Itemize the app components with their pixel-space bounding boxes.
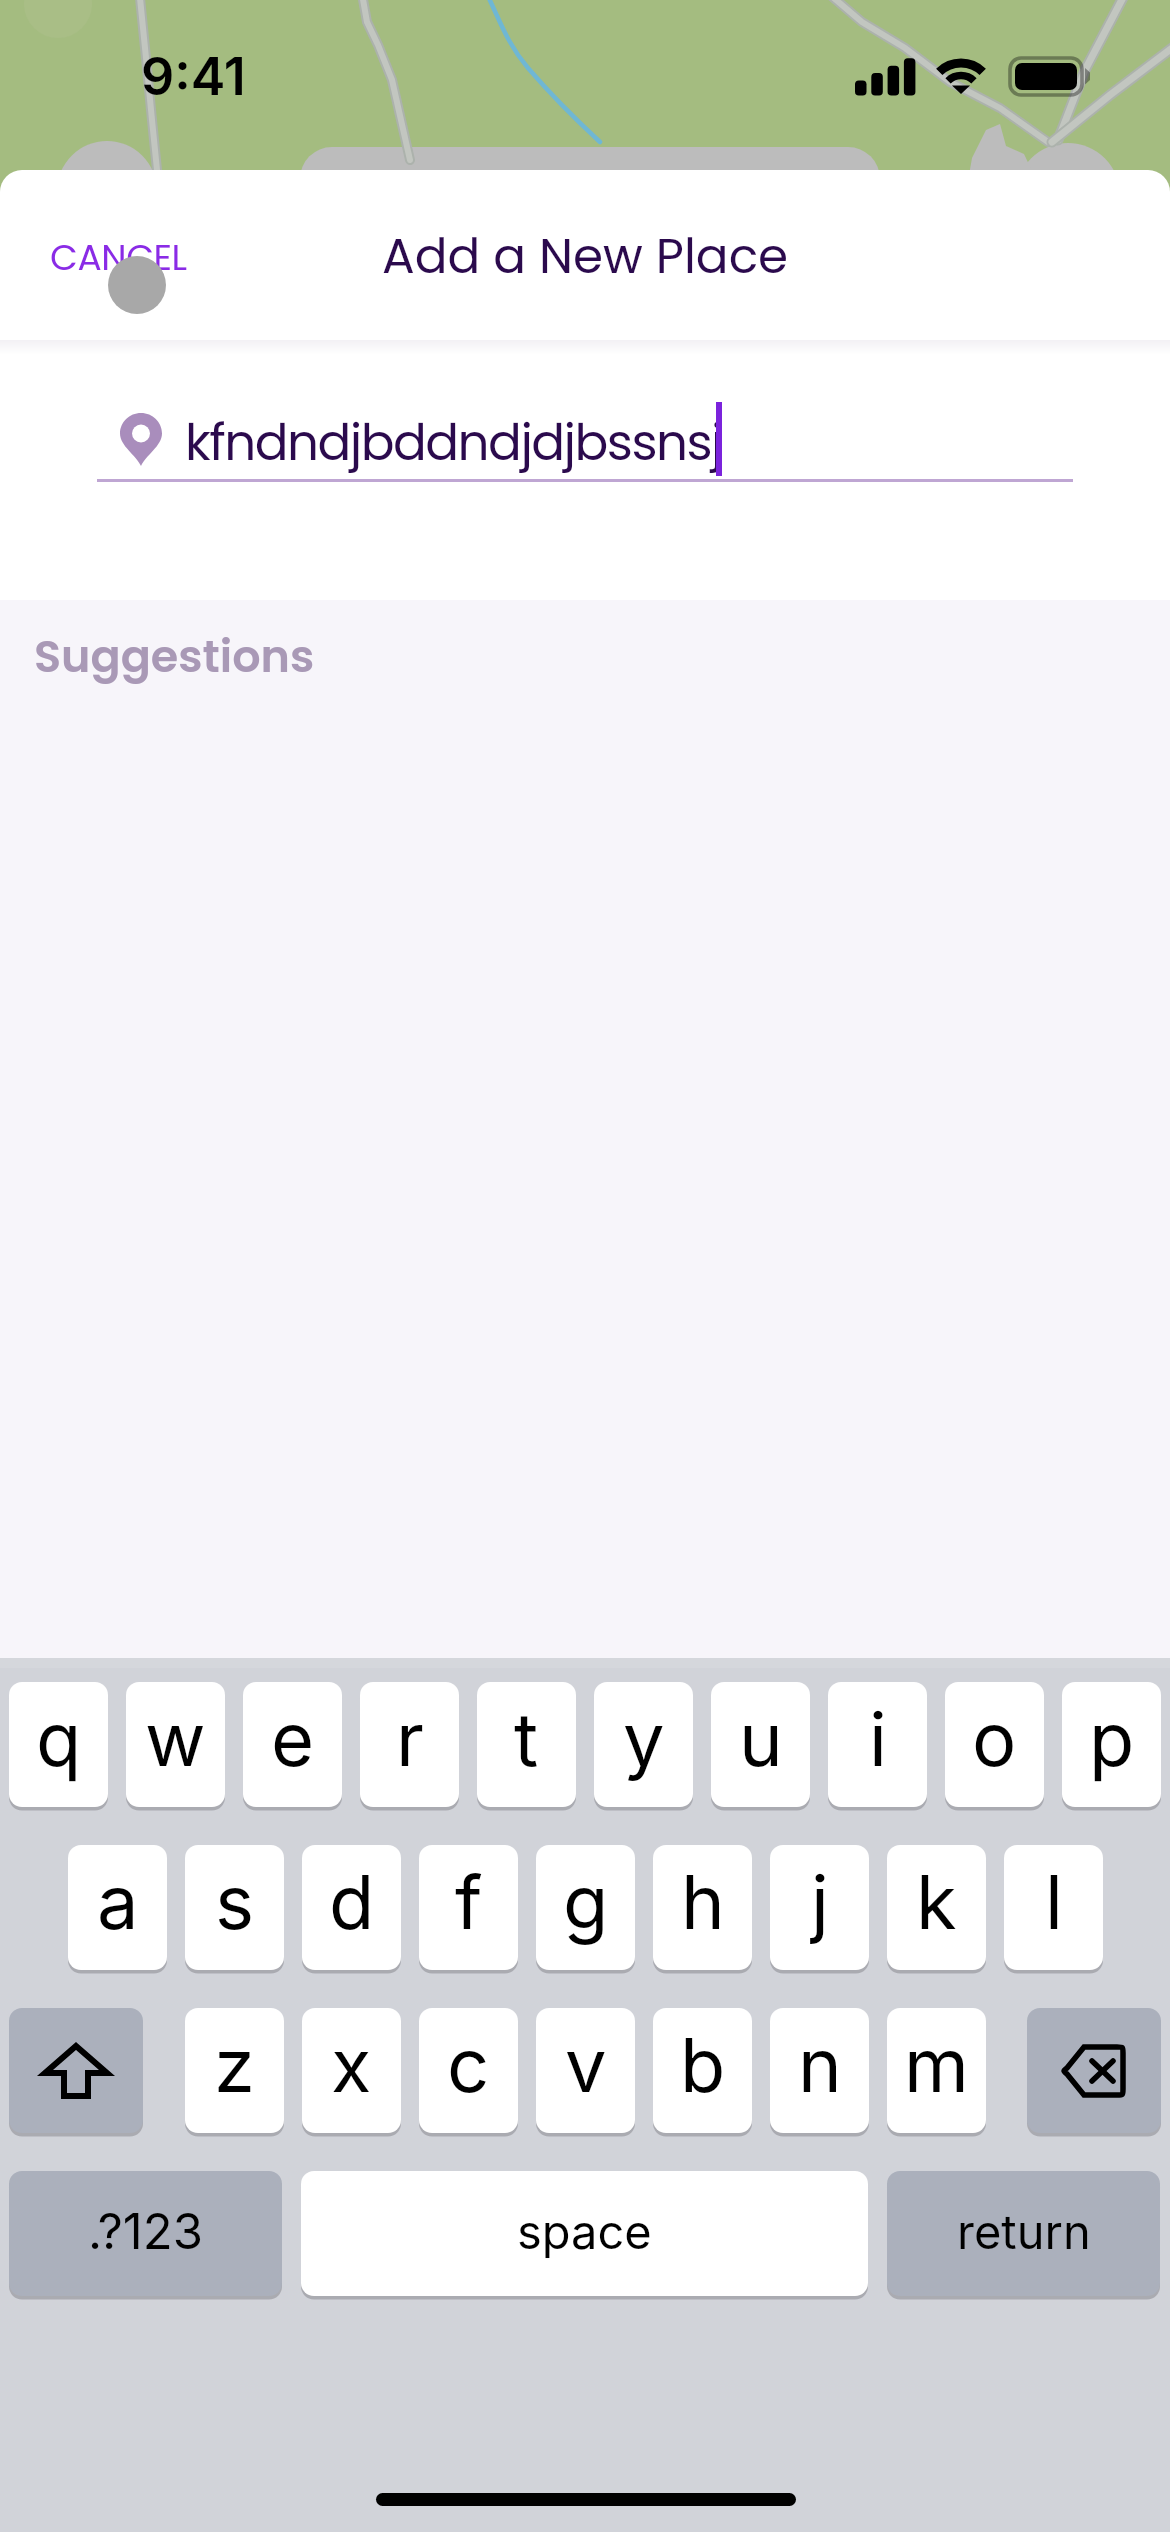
button[interactable]: z <box>185 2008 284 2133</box>
staticText: v <box>565 2020 607 2110</box>
button[interactable]: a <box>68 1845 167 1970</box>
button[interactable]: x <box>302 2008 401 2133</box>
staticText: Add a New Place <box>382 222 789 290</box>
staticText: a <box>97 1857 139 1947</box>
staticText: x <box>331 2020 372 2110</box>
button[interactable]: r <box>360 1682 459 1807</box>
staticText: i <box>869 1694 887 1784</box>
staticText: z <box>214 2020 255 2110</box>
button[interactable]: s <box>185 1845 284 1970</box>
staticText: d <box>329 1857 375 1947</box>
staticText: 9:41 <box>141 45 246 108</box>
button[interactable]: b <box>653 2008 752 2133</box>
button[interactable]: p <box>1062 1682 1161 1807</box>
staticText: s <box>215 1857 255 1947</box>
button[interactable]: d <box>302 1845 401 1970</box>
button[interactable]: Backspace <box>1027 2008 1161 2133</box>
staticText: kfndndjbddndjdjbssnsj <box>185 408 722 478</box>
button[interactable]: t <box>477 1682 576 1807</box>
staticText: t <box>514 1694 539 1784</box>
staticText: h <box>681 1857 725 1947</box>
staticText: f <box>455 1857 483 1947</box>
button[interactable]: space <box>301 2171 868 2296</box>
staticText: j <box>811 1857 829 1947</box>
button[interactable]: w <box>126 1682 225 1807</box>
button[interactable]: o <box>945 1682 1044 1807</box>
staticText: e <box>271 1694 315 1784</box>
button[interactable]: k <box>887 1845 986 1970</box>
button[interactable]: q <box>9 1682 108 1807</box>
staticText: q <box>36 1694 82 1784</box>
staticText: w <box>145 1694 206 1784</box>
button[interactable]: u <box>711 1682 810 1807</box>
button[interactable]: i <box>828 1682 927 1807</box>
button[interactable]: j <box>770 1845 869 1970</box>
staticText: l <box>1045 1857 1063 1947</box>
staticText: u <box>739 1694 783 1784</box>
button[interactable]: Shift <box>9 2008 143 2133</box>
staticText: y <box>623 1694 665 1784</box>
staticText: return <box>957 2203 1091 2260</box>
staticText: m <box>904 2020 969 2110</box>
other: Backspace <box>1062 2044 1126 2098</box>
staticText: Suggestions <box>34 625 315 687</box>
button[interactable]: .?123 <box>9 2171 282 2296</box>
button[interactable]: y <box>594 1682 693 1807</box>
staticText: CANCEL <box>50 232 187 282</box>
staticText: o <box>972 1694 1017 1784</box>
staticText: b <box>680 2020 726 2110</box>
staticText: r <box>396 1694 424 1784</box>
button[interactable]: return <box>887 2171 1160 2296</box>
button[interactable]: m <box>887 2008 986 2133</box>
staticText: g <box>563 1857 609 1947</box>
button[interactable]: CANCEL <box>14 214 223 300</box>
staticText: k <box>916 1857 957 1947</box>
button[interactable]: e <box>243 1682 342 1807</box>
button[interactable]: g <box>536 1845 635 1970</box>
staticText: p <box>1089 1694 1135 1784</box>
other: Shift <box>42 2043 110 2099</box>
button[interactable]: h <box>653 1845 752 1970</box>
button[interactable]: v <box>536 2008 635 2133</box>
button[interactable]: c <box>419 2008 518 2133</box>
staticText: n <box>798 2020 842 2110</box>
staticText: c <box>447 2020 490 2110</box>
staticText: .?123 <box>88 2202 203 2261</box>
button[interactable]: f <box>419 1845 518 1970</box>
button[interactable]: l <box>1004 1845 1103 1970</box>
staticText: space <box>517 2203 652 2260</box>
button[interactable]: n <box>770 2008 869 2133</box>
